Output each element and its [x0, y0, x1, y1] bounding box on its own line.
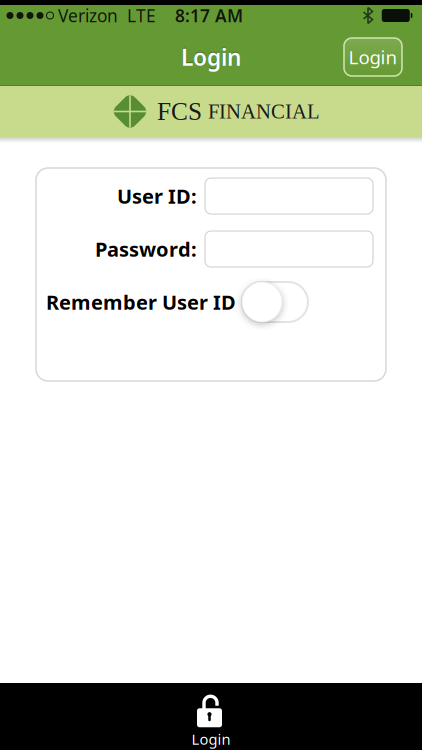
button[interactable]: Login	[344, 38, 402, 76]
staticText: Login	[181, 42, 241, 72]
staticText: FCS	[157, 97, 208, 126]
staticText: Verizon	[53, 4, 118, 27]
staticText: Login	[348, 45, 397, 69]
button[interactable]: User ID	[205, 178, 373, 214]
button[interactable]: Remember User ID	[242, 282, 308, 322]
button[interactable]: Login	[171, 686, 251, 746]
staticText: Login	[191, 729, 230, 749]
staticText: Password:	[95, 236, 197, 262]
button[interactable]: Password	[205, 231, 373, 267]
staticText: Remember User ID	[46, 289, 236, 315]
staticText: 8:17 AM	[175, 4, 243, 27]
staticText: User ID:	[117, 183, 197, 209]
staticText: FINANCIAL	[208, 100, 320, 123]
staticText: LTE	[127, 4, 156, 27]
